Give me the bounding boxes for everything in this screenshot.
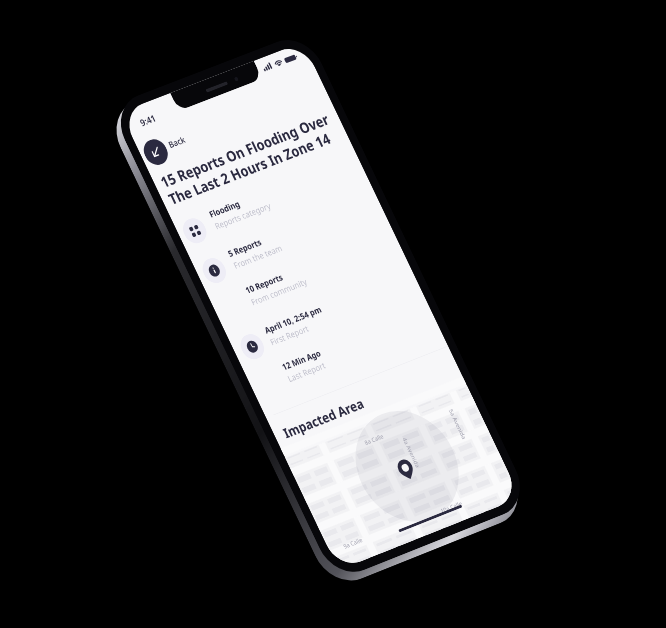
staticText: Flooding	[207, 198, 242, 220]
staticText: Last Report	[285, 359, 328, 384]
staticText: Impacted Area	[280, 394, 367, 442]
staticText: From community	[249, 276, 309, 308]
staticText: 8a Calle	[363, 432, 385, 447]
staticText: 9:41	[138, 112, 158, 129]
button[interactable]: Detail	[236, 331, 268, 362]
staticText: 15 Reports On Flooding Over The Last 2 H…	[157, 109, 340, 209]
staticText: From the team	[231, 242, 284, 271]
button[interactable]: Detail	[179, 215, 211, 247]
button[interactable]: Detail	[198, 255, 230, 286]
staticText: Reports category	[213, 200, 273, 232]
staticText: 10 Reports	[243, 271, 285, 296]
staticText: Back	[166, 134, 187, 150]
staticText: 10a Calle	[439, 499, 463, 515]
staticText: First Report	[268, 322, 311, 348]
button[interactable]: Back	[139, 136, 172, 168]
staticText: 4a Avenida	[401, 436, 422, 469]
staticText: 12 Min Ago	[280, 347, 323, 373]
staticText: April 10, 2:54 pm	[262, 303, 323, 336]
staticText: 5 Reports	[226, 236, 264, 259]
staticText: 5a Avenida	[447, 408, 468, 440]
staticText: 9a Calle	[342, 535, 364, 551]
